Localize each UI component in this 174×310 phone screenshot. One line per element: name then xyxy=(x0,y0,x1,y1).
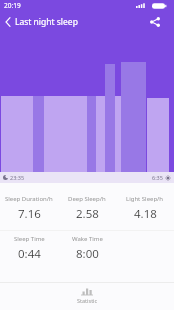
staticText: 23:35 xyxy=(10,174,25,181)
staticText: 0:44 xyxy=(18,246,41,262)
button[interactable]: Sleep Time xyxy=(0,235,58,262)
button[interactable] xyxy=(0,11,15,32)
staticText: Wake Time xyxy=(72,235,103,243)
staticText: Deep Sleep/h xyxy=(68,195,106,203)
button[interactable]: Wake Time xyxy=(58,235,116,262)
button[interactable]: Statistic xyxy=(0,283,174,310)
staticText: Sleep Time xyxy=(14,235,45,243)
staticText: 2.58 xyxy=(76,206,99,222)
staticText: 7.16 xyxy=(18,206,41,222)
staticText: Statistic xyxy=(77,297,98,304)
staticText: 4.18 xyxy=(134,206,157,222)
button[interactable]: Light Sleep/h xyxy=(116,195,174,222)
staticText: Light Sleep/h xyxy=(126,195,164,203)
button[interactable]: Deep Sleep/h xyxy=(58,195,116,222)
staticText: Sleep Duration/h xyxy=(5,195,53,203)
button[interactable] xyxy=(144,11,165,32)
button[interactable]: Sleep Duration/h xyxy=(0,195,58,222)
staticText: Last night sleep xyxy=(15,16,78,28)
staticText: 8:00 xyxy=(76,246,99,262)
staticText: 20:19 xyxy=(4,1,21,10)
staticText: 6:35 xyxy=(152,174,163,181)
